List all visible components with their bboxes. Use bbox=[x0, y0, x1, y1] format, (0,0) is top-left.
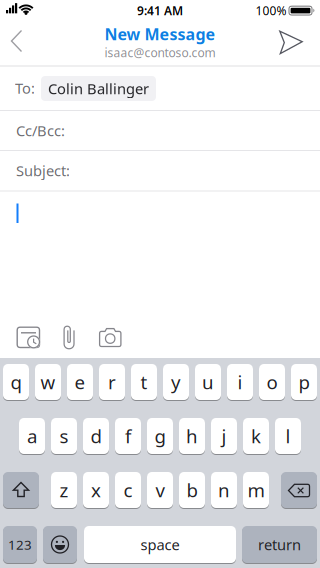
staticText: 100% bbox=[255, 2, 286, 18]
staticText: w bbox=[40, 370, 55, 394]
staticText: s bbox=[59, 424, 68, 448]
staticText: Subject: bbox=[16, 161, 70, 180]
staticText: x bbox=[91, 478, 101, 502]
staticText: n bbox=[218, 478, 230, 502]
button[interactable]: b bbox=[179, 472, 205, 509]
button[interactable]: Send availability bbox=[10, 320, 46, 354]
button[interactable]: f bbox=[115, 418, 141, 455]
staticText: m bbox=[247, 478, 264, 502]
button[interactable]: Attach file bbox=[54, 320, 82, 354]
staticText: k bbox=[251, 424, 261, 448]
button[interactable]: Emoji bbox=[43, 526, 77, 564]
button[interactable]: Cc/Bcc: bbox=[0, 111, 320, 150]
button[interactable]: h bbox=[179, 418, 205, 455]
staticText: t bbox=[140, 370, 147, 394]
staticText: p bbox=[298, 370, 309, 394]
button[interactable]: a bbox=[19, 418, 45, 455]
staticText: 9:41 AM bbox=[137, 2, 183, 18]
staticText: 123 bbox=[8, 536, 32, 553]
button[interactable]: t bbox=[131, 364, 157, 401]
staticText: q bbox=[10, 370, 21, 394]
staticText: u bbox=[202, 370, 214, 394]
button[interactable]: p bbox=[291, 364, 317, 401]
staticText: f bbox=[125, 424, 131, 448]
button[interactable]: x bbox=[83, 472, 109, 509]
button[interactable]: u bbox=[195, 364, 221, 401]
button[interactable]: return bbox=[242, 526, 317, 564]
button[interactable]: v bbox=[147, 472, 173, 509]
button[interactable]: c bbox=[115, 472, 141, 509]
button[interactable]: g bbox=[147, 418, 173, 455]
button[interactable]: i bbox=[227, 364, 253, 401]
button[interactable]: space bbox=[84, 526, 236, 564]
button[interactable]: Back bbox=[2, 24, 32, 60]
button[interactable]: m bbox=[243, 472, 269, 509]
button[interactable]: Colin Ballinger bbox=[41, 76, 156, 101]
button[interactable]: q bbox=[3, 364, 29, 401]
staticText: g bbox=[154, 424, 165, 448]
staticText: return bbox=[258, 535, 301, 554]
button[interactable]: Send bbox=[272, 26, 312, 60]
button[interactable]: d bbox=[83, 418, 109, 455]
staticText: isaac@contoso.com bbox=[104, 45, 215, 61]
staticText: y bbox=[171, 370, 181, 394]
staticText: d bbox=[90, 424, 101, 448]
staticText: b bbox=[186, 478, 197, 502]
button[interactable]: o bbox=[259, 364, 285, 401]
button[interactable]: 123 bbox=[3, 526, 37, 564]
staticText: Colin Ballinger bbox=[48, 79, 149, 98]
staticText: c bbox=[123, 478, 132, 502]
button[interactable]: e bbox=[67, 364, 93, 401]
staticText: z bbox=[59, 478, 68, 502]
staticText: r bbox=[108, 370, 116, 394]
button[interactable]: Delete bbox=[281, 472, 317, 509]
staticText: v bbox=[155, 478, 164, 502]
button[interactable]: y bbox=[163, 364, 189, 401]
staticText: To: bbox=[15, 78, 35, 98]
button[interactable]: r bbox=[99, 364, 125, 401]
staticText: i bbox=[237, 370, 242, 394]
staticText: a bbox=[27, 424, 37, 448]
button[interactable]: j bbox=[211, 418, 237, 455]
staticText: New Message bbox=[104, 23, 215, 45]
staticText: j bbox=[221, 424, 226, 448]
button[interactable]: Attach photo bbox=[94, 322, 128, 352]
staticText: Cc/Bcc: bbox=[16, 121, 65, 140]
staticText: o bbox=[266, 370, 277, 394]
button[interactable]: k bbox=[243, 418, 269, 455]
button[interactable]: w bbox=[35, 364, 61, 401]
button[interactable]: s bbox=[51, 418, 77, 455]
staticText: space bbox=[140, 535, 179, 554]
button[interactable]: Shift bbox=[3, 472, 39, 509]
button[interactable]: n bbox=[211, 472, 237, 509]
staticText: h bbox=[186, 424, 198, 448]
staticText: l bbox=[285, 424, 290, 448]
button[interactable]: Subject: bbox=[0, 151, 320, 190]
staticText: e bbox=[74, 370, 85, 394]
button[interactable]: l bbox=[275, 418, 301, 455]
button[interactable]: z bbox=[51, 472, 77, 509]
